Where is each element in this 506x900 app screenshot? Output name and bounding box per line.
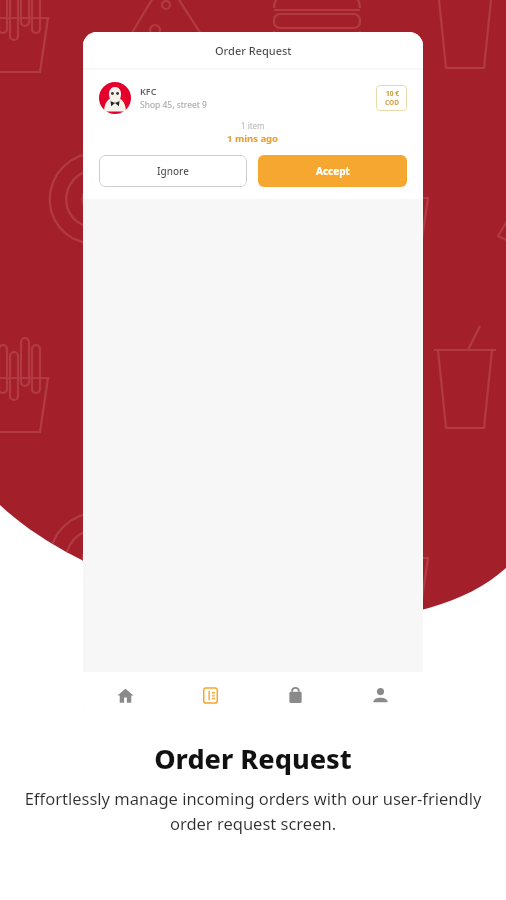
- button[interactable]: Accept: [258, 155, 407, 187]
- button[interactable]: Ignore: [99, 155, 247, 187]
- staticText: 1 mins ago: [227, 132, 279, 145]
- button[interactable]: Home: [83, 672, 168, 718]
- button[interactable]: Bag: [253, 672, 338, 718]
- button[interactable]: Orders: [168, 672, 253, 718]
- staticText: Order Request: [154, 740, 352, 777]
- staticText: COD: [385, 98, 399, 107]
- button[interactable]: Profile: [338, 672, 423, 718]
- staticText: 10 €: [386, 89, 399, 98]
- staticText: KFC: [140, 85, 157, 97]
- staticText: Accept: [316, 164, 350, 178]
- staticText: 1 item: [241, 120, 265, 131]
- staticText: Order Request: [215, 43, 292, 58]
- staticText: Shop 45, street 9: [140, 99, 207, 111]
- button[interactable]: 10 €: [376, 85, 407, 111]
- staticText: Ignore: [157, 164, 189, 178]
- staticText: Effortlessly manage incoming orders with…: [14, 787, 492, 834]
